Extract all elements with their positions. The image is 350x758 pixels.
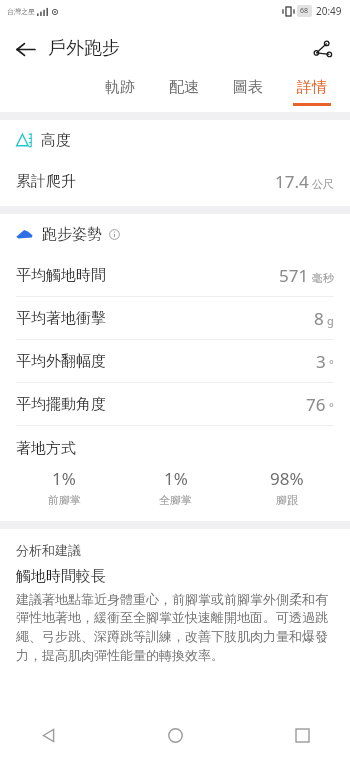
- button[interactable]: Share: [301, 28, 343, 70]
- staticText: °: [329, 399, 334, 414]
- staticText: 68: [300, 6, 309, 16]
- staticText: 1%: [52, 467, 76, 490]
- staticText: 建議著地點靠近身體重心，前腳掌或前腳掌外側柔和有彈性地著地，緩衝至全腳掌並快速離…: [16, 591, 336, 664]
- staticText: 台灣之星: [7, 7, 35, 16]
- button[interactable]: 1%: [8, 467, 120, 507]
- staticText: 軌跡: [105, 78, 135, 97]
- staticText: 1%: [164, 467, 188, 490]
- staticText: 平均擺動角度: [16, 395, 106, 414]
- staticText: 571: [279, 264, 309, 287]
- button[interactable]: Back: [26, 713, 70, 757]
- staticText: 著地方式: [16, 439, 76, 458]
- button[interactable]: 平均著地衝擊: [0, 297, 350, 339]
- button[interactable]: 詳情: [280, 75, 344, 112]
- staticText: 腳跟: [276, 493, 298, 507]
- staticText: 公尺: [312, 177, 334, 191]
- staticText: 20:49: [316, 4, 342, 18]
- staticText: 跑步姿勢: [42, 225, 102, 244]
- staticText: 配速: [169, 78, 199, 97]
- staticText: 累計爬升: [16, 172, 76, 191]
- button[interactable]: 圖表: [216, 75, 280, 112]
- staticText: 毫秒: [312, 271, 334, 285]
- staticText: 觸地時間較長: [16, 567, 106, 586]
- staticText: 98%: [270, 467, 304, 490]
- button[interactable]: Info: [107, 227, 121, 241]
- button[interactable]: Back: [4, 28, 46, 70]
- button[interactable]: 軌跡: [88, 75, 152, 112]
- button[interactable]: 平均觸地時間: [0, 254, 350, 296]
- staticText: 詳情: [297, 78, 327, 97]
- staticText: 圖表: [233, 78, 263, 97]
- button[interactable]: 配速: [152, 75, 216, 112]
- staticText: 平均觸地時間: [16, 266, 106, 285]
- staticText: 76: [306, 393, 326, 416]
- staticText: °: [329, 356, 334, 371]
- staticText: 全腳掌: [159, 493, 192, 507]
- staticText: 3: [316, 350, 326, 373]
- staticText: 平均外翻幅度: [16, 352, 106, 371]
- staticText: 戶外跑步: [48, 37, 120, 60]
- staticText: g: [327, 313, 334, 328]
- button[interactable]: 平均擺動角度: [0, 383, 350, 425]
- button[interactable]: 累計爬升: [0, 160, 350, 202]
- button[interactable]: 平均外翻幅度: [0, 340, 350, 382]
- staticText: 8: [314, 307, 324, 330]
- staticText: 分析和建議: [16, 542, 81, 558]
- button[interactable]: Home: [153, 713, 197, 757]
- button[interactable]: Recents: [280, 713, 324, 757]
- button[interactable]: 1%: [120, 467, 231, 507]
- button[interactable]: 98%: [231, 467, 342, 507]
- staticText: 高度: [41, 131, 71, 150]
- staticText: 前腳掌: [48, 493, 81, 507]
- staticText: 17.4: [275, 170, 309, 193]
- staticText: 平均著地衝擊: [16, 309, 106, 328]
